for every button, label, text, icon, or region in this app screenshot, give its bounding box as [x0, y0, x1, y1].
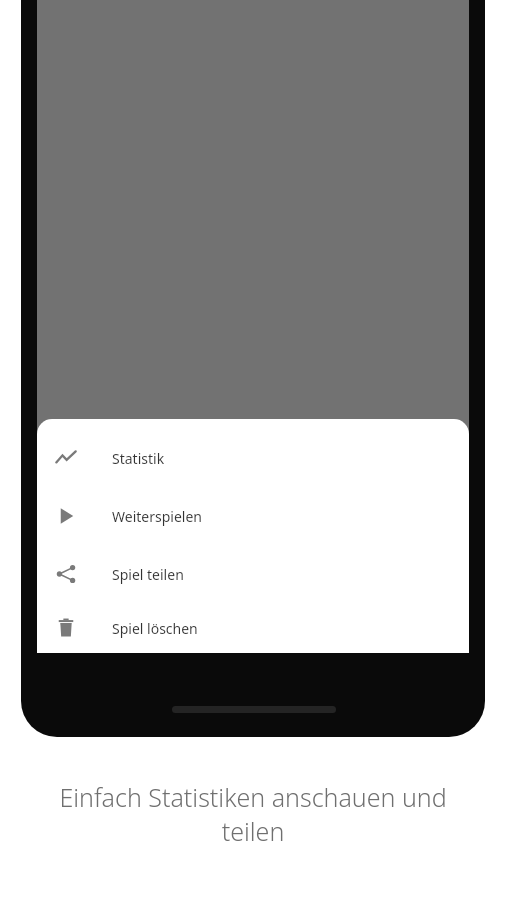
- button[interactable]: Share game: [37, 545, 469, 603]
- other: Continue playing: [55, 505, 77, 527]
- staticText: Spiel teilen: [112, 565, 184, 584]
- other: Delete game: [55, 617, 77, 639]
- staticText: Einfach Statistiken anschauen und teilen: [30, 780, 476, 849]
- button[interactable]: Delete game: [37, 603, 469, 653]
- staticText: Statistik: [112, 449, 165, 468]
- button[interactable]: Statistics: [37, 429, 469, 487]
- other: Statistics: [55, 447, 77, 469]
- button[interactable]: Continue playing: [37, 487, 469, 545]
- staticText: Weiterspielen: [112, 507, 202, 526]
- other: Share game: [55, 563, 77, 585]
- staticText: Spiel löschen: [112, 619, 198, 638]
